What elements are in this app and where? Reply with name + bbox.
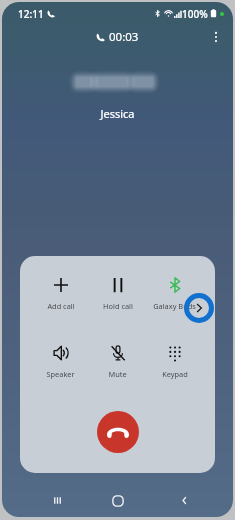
button[interactable]: Keypad <box>146 345 203 379</box>
staticText: Jessica <box>2 106 233 121</box>
button[interactable]: Speaker <box>32 345 89 379</box>
button[interactable]: Back <box>168 484 200 516</box>
staticText: Hold call <box>103 301 133 311</box>
button[interactable]: Mute <box>89 345 146 379</box>
staticText: Keypad <box>162 369 188 379</box>
staticText: Mute <box>108 369 127 379</box>
button[interactable]: More call options <box>183 292 215 324</box>
button[interactable]: Recents <box>41 484 73 516</box>
staticText: Add call <box>47 301 75 311</box>
staticText: 00:03 <box>109 29 139 45</box>
button[interactable]: Add call <box>32 277 89 311</box>
button[interactable]: More options <box>205 26 227 48</box>
button[interactable]: Galaxy Buds <box>146 277 203 311</box>
staticText: Speaker <box>46 369 75 379</box>
button[interactable]: Hold call <box>89 277 146 311</box>
button[interactable]: End call <box>97 411 139 453</box>
staticText: Galaxy Buds <box>153 301 196 311</box>
staticText: 100% <box>182 7 208 21</box>
staticText: 12:11 <box>18 7 44 21</box>
button[interactable]: Home <box>102 485 134 517</box>
